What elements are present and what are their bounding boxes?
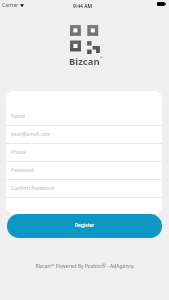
button[interactable]: Phone: [6, 144, 162, 161]
button[interactable]: your@email.com: [6, 126, 162, 143]
staticText: Carrier: [2, 2, 19, 9]
staticText: 9:44 AM: [73, 3, 93, 10]
staticText: ™: [100, 55, 103, 60]
staticText: Name: [11, 113, 26, 120]
staticText: your@email.com: [11, 131, 51, 138]
button[interactable]: Name: [6, 108, 162, 125]
button[interactable]: Password: [6, 162, 162, 179]
staticText: Bizcan: [69, 55, 100, 68]
staticText: Bizcan™ Powered By Posbos® - AdAgency.: [35, 263, 135, 270]
staticText: Confirm Password: [11, 185, 54, 192]
button[interactable]: Register: [7, 214, 162, 238]
button[interactable]: Confirm Password: [6, 180, 162, 197]
staticText: Password: [11, 167, 34, 174]
staticText: Register: [75, 222, 95, 229]
staticText: Phone: [11, 149, 27, 156]
